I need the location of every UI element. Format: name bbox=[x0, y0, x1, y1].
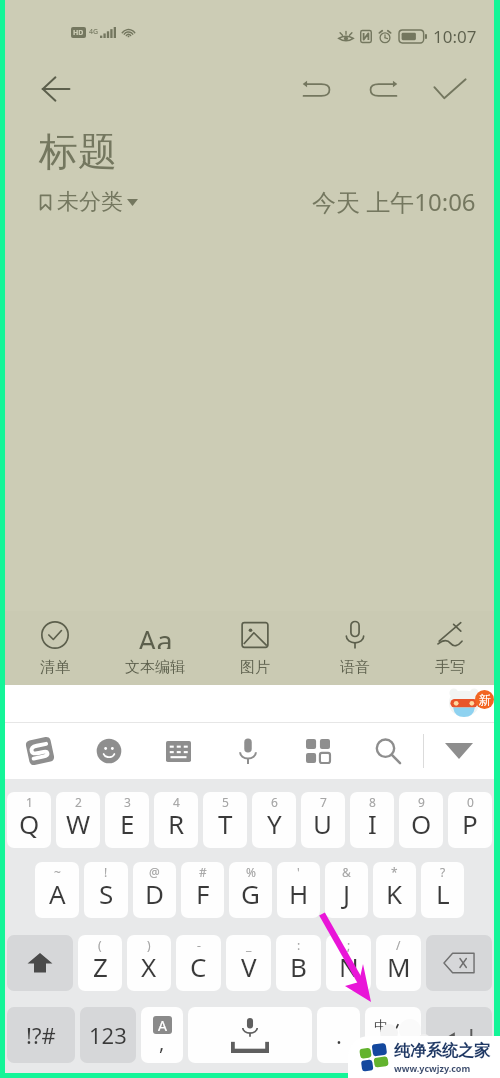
staticText: F bbox=[196, 876, 210, 911]
staticText: T bbox=[218, 806, 233, 841]
button[interactable]: 0 bbox=[448, 792, 492, 848]
button[interactable]: & bbox=[325, 862, 368, 918]
staticText: 今天 上午10:06 bbox=[312, 185, 476, 218]
staticText: 1 bbox=[26, 794, 33, 810]
button[interactable]: 手写 bbox=[405, 611, 494, 685]
button[interactable]: . bbox=[317, 1007, 360, 1063]
staticText: 标题 bbox=[39, 127, 117, 176]
button[interactable]: Enter bbox=[426, 1007, 492, 1063]
button[interactable]: Space bbox=[188, 1007, 312, 1063]
button[interactable]: 中 bbox=[365, 1007, 421, 1063]
button[interactable]: 2 bbox=[56, 792, 100, 848]
button[interactable]: ( bbox=[78, 935, 122, 991]
button[interactable]: # bbox=[181, 862, 224, 918]
staticText: 123 bbox=[89, 1020, 127, 1050]
button[interactable]: 1 bbox=[7, 792, 51, 848]
staticText: 新 bbox=[479, 692, 491, 707]
button[interactable]: !?# bbox=[7, 1007, 75, 1063]
staticText: !?# bbox=[26, 1020, 56, 1050]
button[interactable]: 7 bbox=[301, 792, 345, 848]
button[interactable]: : bbox=[276, 935, 321, 991]
staticText: 7 bbox=[320, 794, 327, 810]
staticText: # bbox=[199, 864, 207, 880]
button[interactable]: 9 bbox=[399, 792, 443, 848]
button[interactable]: @ bbox=[133, 862, 176, 918]
button[interactable]: Sogou bbox=[5, 723, 74, 779]
button[interactable]: Delete bbox=[426, 935, 492, 991]
button[interactable]: ) bbox=[127, 935, 171, 991]
button[interactable]: ; bbox=[326, 935, 371, 991]
staticText: Q bbox=[19, 806, 40, 841]
button[interactable]: Undo bbox=[284, 60, 348, 118]
staticText: S bbox=[99, 876, 114, 911]
button[interactable]: 5 bbox=[203, 792, 247, 848]
staticText: 纯净系统之家 bbox=[394, 1041, 490, 1061]
staticText: 10:07 bbox=[433, 25, 477, 48]
button[interactable]: 8 bbox=[350, 792, 394, 848]
staticText: www.ycwjzy.com bbox=[394, 1062, 471, 1074]
staticText: ~ bbox=[54, 864, 61, 880]
button[interactable]: Collapse keyboard bbox=[424, 723, 494, 779]
staticText: M bbox=[387, 949, 411, 984]
button[interactable]: 图片 bbox=[205, 611, 305, 685]
button[interactable]: ? bbox=[421, 862, 464, 918]
button[interactable]: 123 bbox=[80, 1007, 136, 1063]
staticText: W bbox=[66, 806, 91, 841]
staticText: E bbox=[120, 806, 135, 841]
staticText: 4G bbox=[89, 27, 99, 37]
button[interactable]: Search bbox=[353, 723, 423, 779]
button[interactable]: ' bbox=[277, 862, 320, 918]
staticText: 8 bbox=[369, 794, 376, 810]
button[interactable]: / bbox=[376, 935, 421, 991]
button[interactable]: Aa bbox=[105, 611, 205, 685]
button[interactable]: 未分类 bbox=[39, 188, 138, 216]
button[interactable]: _ bbox=[226, 935, 271, 991]
button[interactable]: Emoji bbox=[74, 723, 143, 779]
staticText: L bbox=[436, 876, 450, 911]
staticText: 英 bbox=[398, 1034, 412, 1052]
button[interactable]: Back bbox=[31, 64, 81, 114]
staticText: 手写 bbox=[435, 658, 465, 677]
button[interactable]: A bbox=[141, 1007, 183, 1063]
button[interactable]: Redo bbox=[348, 60, 418, 118]
button[interactable]: Keyboard bbox=[143, 723, 213, 779]
staticText: N bbox=[339, 949, 359, 984]
staticText: P bbox=[462, 806, 478, 841]
button[interactable]: 语音 bbox=[305, 611, 405, 685]
staticText: * bbox=[391, 864, 398, 880]
staticText: O bbox=[411, 806, 432, 841]
staticText: K bbox=[386, 876, 403, 911]
button[interactable]: 6 bbox=[252, 792, 296, 848]
button[interactable]: ! bbox=[84, 862, 128, 918]
staticText: A bbox=[158, 1016, 167, 1034]
button[interactable]: % bbox=[229, 862, 272, 918]
staticText: _ bbox=[246, 937, 252, 953]
button[interactable]: Done bbox=[418, 60, 482, 118]
staticText: HD bbox=[73, 28, 84, 38]
staticText: 清单 bbox=[40, 658, 70, 677]
staticText: 文本编辑 bbox=[125, 658, 185, 677]
staticText: @ bbox=[149, 864, 160, 880]
button[interactable]: 3 bbox=[105, 792, 149, 848]
staticText: ! bbox=[104, 864, 108, 880]
button[interactable]: Apps bbox=[283, 723, 353, 779]
staticText: ( bbox=[98, 937, 102, 953]
staticText: I bbox=[368, 806, 377, 841]
staticText: 5 bbox=[222, 794, 229, 810]
staticText: C bbox=[190, 949, 207, 984]
staticText: J bbox=[343, 876, 351, 911]
button[interactable]: 4 bbox=[154, 792, 198, 848]
button[interactable]: 清单 bbox=[5, 611, 105, 685]
button[interactable]: ~ bbox=[35, 862, 79, 918]
staticText: 图片 bbox=[240, 658, 270, 677]
button[interactable]: Voice input bbox=[213, 723, 283, 779]
button[interactable]: * bbox=[373, 862, 416, 918]
button[interactable]: - bbox=[176, 935, 221, 991]
staticText: R bbox=[168, 806, 185, 841]
button[interactable]: Shift bbox=[7, 935, 73, 991]
staticText: 中 bbox=[374, 1018, 388, 1036]
staticText: , bbox=[159, 1029, 165, 1056]
staticText: ' bbox=[297, 864, 300, 880]
staticText: 9 bbox=[418, 794, 425, 810]
staticText: G bbox=[241, 876, 260, 911]
